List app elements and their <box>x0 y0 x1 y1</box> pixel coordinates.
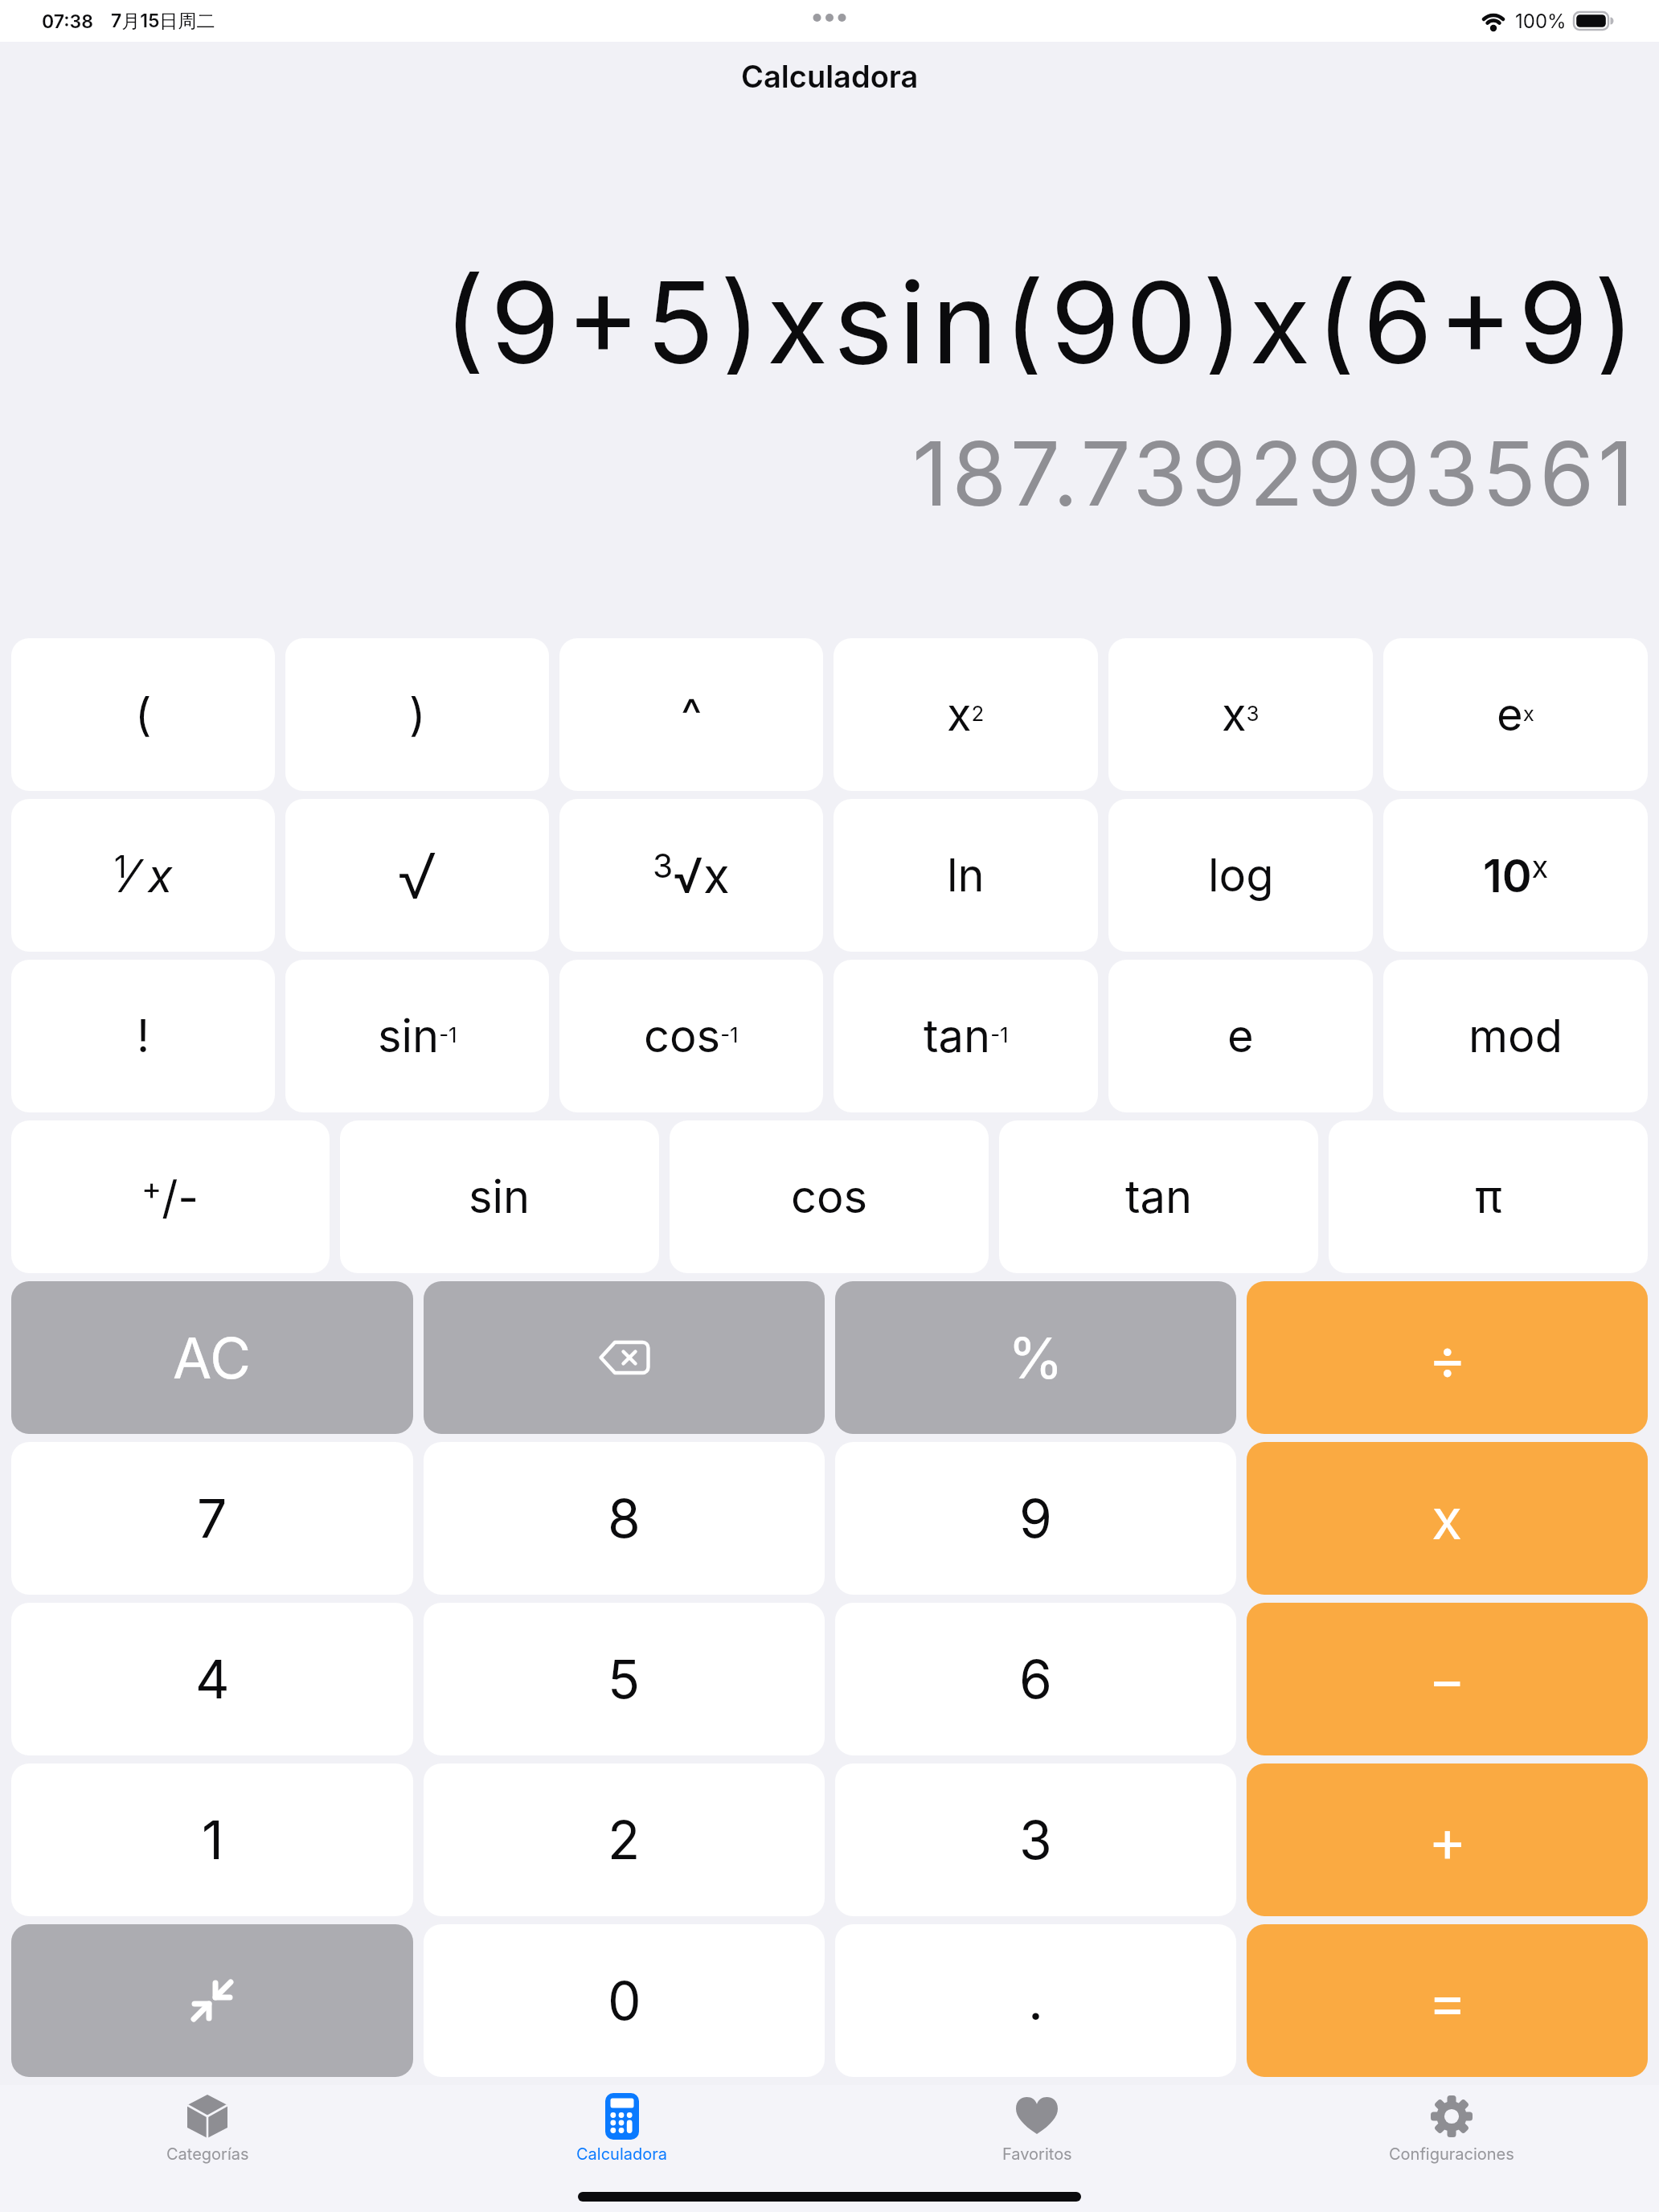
button[interactable]: . <box>835 1924 1236 2077</box>
button[interactable]: 3 <box>835 1763 1236 1916</box>
button[interactable]: √ <box>285 799 549 952</box>
staticText: cos <box>791 1169 868 1224</box>
button[interactable]: sin <box>340 1120 659 1273</box>
button[interactable]: 0 <box>424 1924 825 2077</box>
staticText: +/- <box>141 1169 199 1225</box>
button[interactable]: 1⁄ x <box>11 799 275 952</box>
staticText: Favoritos <box>1002 2144 1072 2164</box>
staticText: 3 <box>1019 1808 1052 1872</box>
staticText: Configuraciones <box>1389 2144 1514 2164</box>
staticText: 7 <box>197 1486 227 1550</box>
button[interactable]: 4 <box>11 1603 413 1755</box>
staticText: tan-1 <box>924 1009 1009 1063</box>
button[interactable] <box>424 1281 825 1434</box>
button[interactable]: π <box>1329 1120 1648 1273</box>
button[interactable]: x <box>1247 1442 1648 1595</box>
staticText: 1⁄ x <box>114 848 173 903</box>
staticText: − <box>1428 1645 1466 1714</box>
staticText: sin <box>469 1169 530 1224</box>
button[interactable]: +/- <box>11 1120 330 1273</box>
staticText: mod <box>1469 1009 1563 1063</box>
button[interactable]: ^ <box>559 638 823 791</box>
staticText: cos-1 <box>644 1009 739 1063</box>
staticText: = <box>1428 1966 1467 2036</box>
button[interactable]: mod <box>1383 960 1648 1112</box>
staticText: 7月15日周二 <box>111 10 215 33</box>
button[interactable]: ( <box>11 638 275 791</box>
staticText: x2 <box>947 687 985 742</box>
staticText: ex <box>1497 687 1534 742</box>
staticText: AC <box>173 1324 252 1392</box>
staticText: π <box>1475 1169 1502 1224</box>
staticText: ^ <box>681 687 703 742</box>
staticText: + <box>1428 1805 1467 1875</box>
staticText: Calculadora <box>576 2144 668 2164</box>
staticText: 0 <box>608 1968 641 2033</box>
button[interactable]: 6 <box>835 1603 1236 1755</box>
staticText: 3√x <box>653 846 730 905</box>
staticText: 5 <box>608 1647 641 1711</box>
staticText: 100% <box>1515 10 1567 33</box>
button[interactable]: tan <box>999 1120 1318 1273</box>
button[interactable]: x3 <box>1108 638 1373 791</box>
staticText: 9 <box>1019 1486 1052 1550</box>
button[interactable]: cos-1 <box>559 960 823 1112</box>
button[interactable]: cos <box>670 1120 989 1273</box>
button[interactable]: Calculadora <box>415 2085 829 2212</box>
staticText: ( <box>135 687 152 742</box>
staticText: e <box>1227 1009 1254 1063</box>
button[interactable]: AC <box>11 1281 413 1434</box>
staticText: ) <box>409 687 426 742</box>
button[interactable]: ! <box>11 960 275 1112</box>
staticText: x <box>1432 1485 1463 1553</box>
staticText: 4 <box>195 1647 230 1711</box>
button[interactable]: ) <box>285 638 549 791</box>
button[interactable]: Favoritos <box>829 2085 1244 2212</box>
staticText: . <box>1028 1968 1044 2033</box>
staticText: ! <box>137 1009 150 1063</box>
button[interactable]: 8 <box>424 1442 825 1595</box>
button[interactable]: log <box>1108 799 1373 952</box>
button[interactable]: 1 <box>11 1763 413 1916</box>
staticText: 2 <box>608 1808 641 1872</box>
button[interactable]: 3√x <box>559 799 823 952</box>
button[interactable]: 2 <box>424 1763 825 1916</box>
button[interactable]: − <box>1247 1603 1648 1755</box>
staticText: (9+5)xsin(90)x(6+9) <box>444 254 1641 375</box>
staticText: Categorías <box>166 2144 249 2164</box>
button[interactable]: e <box>1108 960 1373 1112</box>
button[interactable]: % <box>835 1281 1236 1434</box>
button[interactable]: x2 <box>834 638 1098 791</box>
staticText: % <box>1008 1324 1063 1392</box>
staticText: 07:38 <box>42 10 93 33</box>
button[interactable]: ex <box>1383 638 1648 791</box>
staticText: ÷ <box>1428 1323 1467 1393</box>
staticText: 6 <box>1019 1647 1052 1711</box>
button[interactable]: 10x <box>1383 799 1648 952</box>
button[interactable]: 7 <box>11 1442 413 1595</box>
button[interactable]: ln <box>834 799 1098 952</box>
button[interactable]: ÷ <box>1247 1281 1648 1434</box>
staticText: Calculadora <box>741 58 919 95</box>
button[interactable]: Configuraciones <box>1244 2085 1659 2212</box>
staticText: tan <box>1125 1169 1193 1224</box>
button[interactable]: 5 <box>424 1603 825 1755</box>
button[interactable]: + <box>1247 1763 1648 1916</box>
button[interactable]: Categorías <box>0 2085 415 2212</box>
staticText: sin-1 <box>378 1009 457 1063</box>
staticText: log <box>1208 848 1274 903</box>
staticText: 187.7392993561 <box>912 420 1638 524</box>
staticText: 1 <box>202 1808 223 1872</box>
staticText: x3 <box>1222 687 1260 742</box>
button[interactable] <box>11 1924 413 2077</box>
button[interactable]: 9 <box>835 1442 1236 1595</box>
staticText: ln <box>947 848 985 903</box>
staticText: √ <box>398 838 436 913</box>
staticText: 8 <box>608 1486 641 1550</box>
button[interactable]: = <box>1247 1924 1648 2077</box>
button[interactable]: tan-1 <box>834 960 1098 1112</box>
button[interactable]: sin-1 <box>285 960 549 1112</box>
staticText: 10x <box>1483 848 1549 903</box>
